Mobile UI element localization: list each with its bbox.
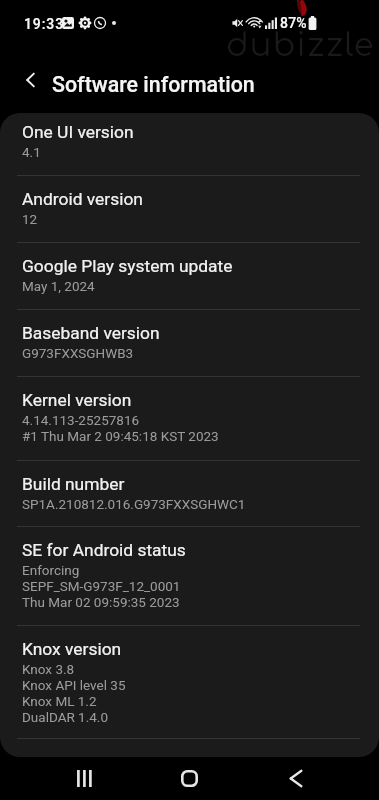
button[interactable]: Build number [0, 461, 379, 527]
staticText: 19:33 [24, 16, 65, 32]
staticText: Kernel version [22, 390, 132, 410]
button[interactable]: Home [165, 757, 213, 800]
staticText: SP1A.210812.016.G973FXXSGHWC1 [22, 496, 246, 512]
button[interactable]: Google Play system update [0, 243, 379, 310]
button[interactable]: Knox version [0, 626, 379, 739]
staticText: Knox version [22, 639, 122, 659]
button[interactable]: Recent apps [60, 757, 108, 800]
button[interactable]: One UI version [0, 113, 379, 176]
staticText: G973FXXSGHWB3 [22, 345, 134, 361]
staticText: Knox API level 35 [22, 677, 126, 693]
staticText: Build number [22, 474, 125, 494]
staticText: Thu Mar 02 09:59:35 2023 [22, 594, 180, 610]
staticText: 12 [22, 211, 38, 227]
staticText: May 1, 2024 [22, 278, 95, 294]
staticText: 87% [280, 15, 307, 31]
staticText: Knox ML 1.2 [22, 693, 97, 709]
button[interactable]: SE for Android status [0, 527, 379, 626]
staticText: #1 Thu Mar 2 09:45:18 KST 2023 [22, 428, 219, 444]
button[interactable]: Kernel version [0, 377, 379, 461]
staticText: SEPF_SM-G973F_12_0001 [22, 578, 181, 594]
button[interactable]: Back [272, 757, 320, 800]
staticText: DualDAR 1.4.0 [22, 709, 109, 725]
staticText: One UI version [22, 122, 134, 142]
button[interactable]: Android version [0, 176, 379, 243]
staticText: Enforcing [22, 562, 80, 578]
staticText: Software information [52, 72, 255, 97]
staticText: SE for Android status [22, 540, 186, 560]
staticText: Google Play system update [22, 256, 233, 276]
staticText: Baseband version [22, 323, 160, 343]
button[interactable]: Navigate up [14, 63, 48, 97]
staticText: Android version [22, 189, 143, 209]
staticText: 4.1 [22, 144, 41, 160]
staticText: dubizzle [226, 28, 375, 64]
button[interactable]: Baseband version [0, 310, 379, 377]
staticText: Knox 3.8 [22, 661, 75, 677]
staticText: 4.14.113-25257816 [22, 412, 140, 428]
